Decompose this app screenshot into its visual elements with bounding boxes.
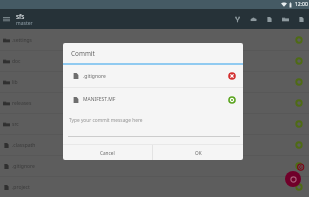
staticText: 12:00 <box>295 1 308 8</box>
staticText: doc <box>12 58 21 65</box>
staticText: src <box>12 121 19 128</box>
button[interactable]: .classpath <box>0 135 309 155</box>
staticText: lib <box>12 79 18 86</box>
button[interactable]: Commit <box>285 171 301 187</box>
staticText: .gitignore <box>12 163 35 170</box>
staticText: MANIFEST.MF <box>83 96 116 103</box>
staticText: releases <box>12 100 32 107</box>
button[interactable]: doc <box>0 51 309 71</box>
button[interactable]: .project <box>0 177 309 197</box>
button[interactable]: .gitignore <box>0 156 309 176</box>
button[interactable]: MANIFEST.MF <box>63 88 243 111</box>
staticText: .classpath <box>12 142 36 149</box>
button[interactable]: New folder <box>277 9 293 29</box>
staticText: Type your commit message here <box>69 117 143 124</box>
button[interactable]: Open navigation menu <box>0 9 12 29</box>
staticText: Commit <box>71 49 95 58</box>
button[interactable]: OK <box>153 145 243 160</box>
button[interactable]: src <box>0 114 309 134</box>
staticText: .settings <box>12 37 33 44</box>
button[interactable]: .settings <box>0 30 309 50</box>
staticText: .gitignore <box>83 73 106 80</box>
button[interactable]: lib <box>0 72 309 92</box>
button[interactable]: New file <box>261 9 277 29</box>
button[interactable]: More options <box>293 9 309 29</box>
button[interactable]: Cancel <box>63 145 152 160</box>
staticText: OK <box>195 150 202 156</box>
staticText: .project <box>12 184 30 191</box>
staticText: master <box>16 20 33 27</box>
staticText: sfs <box>16 12 25 21</box>
button[interactable]: Cloud <box>245 9 261 29</box>
button[interactable]: Branch <box>229 9 245 29</box>
staticText: Cancel <box>100 150 115 156</box>
button[interactable]: .gitignore <box>63 65 243 87</box>
button[interactable]: releases <box>0 93 309 113</box>
